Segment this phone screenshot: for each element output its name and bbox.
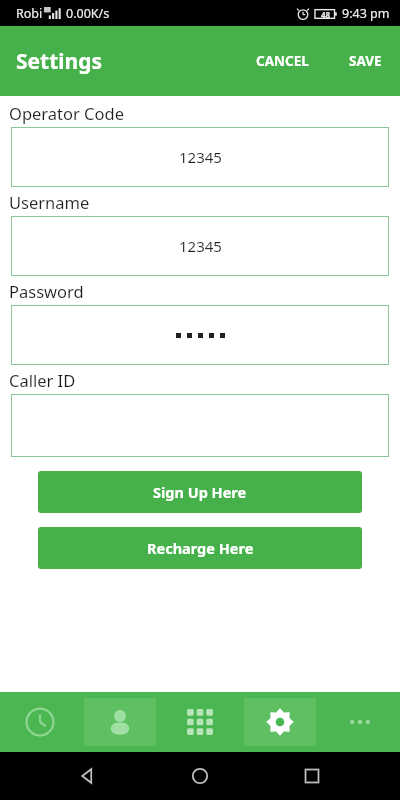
button[interactable]: More: [320, 692, 400, 752]
button[interactable]: 12345: [11, 216, 389, 276]
button[interactable]: SAVE: [341, 42, 390, 80]
button[interactable]: 12345: [11, 127, 389, 187]
staticText: 0.00K/s: [66, 5, 110, 22]
button[interactable]: Home: [176, 752, 224, 800]
staticText: Recharge Here: [147, 538, 254, 558]
staticText: 9:43 pm: [342, 5, 390, 22]
button[interactable]: Recharge Here: [38, 527, 362, 569]
staticText: Settings: [16, 47, 103, 76]
button[interactable]: [11, 305, 389, 365]
button[interactable]: History: [0, 692, 80, 752]
staticText: SAVE: [349, 52, 382, 70]
button[interactable]: Settings: [240, 692, 320, 752]
button[interactable]: Contacts: [80, 692, 160, 752]
button[interactable]: CANCEL: [246, 42, 319, 80]
button[interactable]: Settings: [12, 43, 107, 80]
staticText: 12345: [179, 147, 222, 167]
staticText: Username: [9, 191, 90, 213]
button[interactable]: Back: [64, 752, 112, 800]
staticText: 12345: [179, 236, 222, 256]
staticText: 48: [321, 9, 331, 20]
button[interactable]: Dialpad: [160, 692, 240, 752]
button[interactable]: Sign Up Here: [38, 471, 362, 513]
staticText: CANCEL: [256, 52, 309, 70]
staticText: Operator Code: [9, 102, 124, 124]
staticText: Password: [9, 280, 84, 302]
staticText: Robi: [16, 5, 43, 22]
button[interactable]: [11, 394, 389, 457]
staticText: Caller ID: [9, 369, 76, 391]
staticText: Sign Up Here: [153, 482, 247, 502]
button[interactable]: Recents: [288, 752, 336, 800]
